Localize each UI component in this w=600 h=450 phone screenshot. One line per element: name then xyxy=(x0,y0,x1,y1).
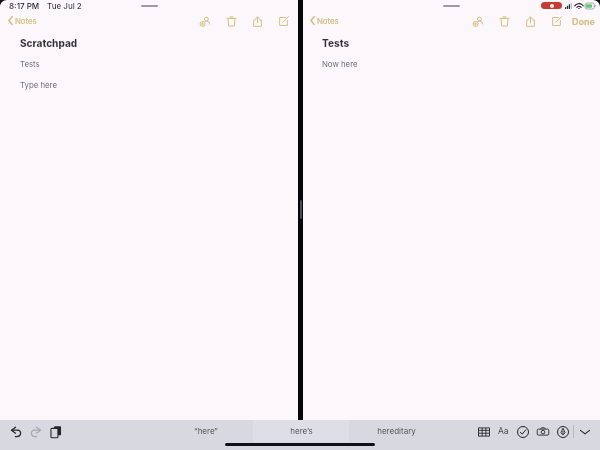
staticText: “here” xyxy=(194,426,218,436)
staticText: Type here xyxy=(20,80,57,89)
staticText: hereditary xyxy=(377,426,416,436)
button[interactable]: Hide keyboard xyxy=(577,424,592,439)
button[interactable]: Aa xyxy=(496,424,510,438)
staticText: 8:17 PM xyxy=(9,1,40,11)
button[interactable]: Add people xyxy=(471,14,486,29)
button[interactable]: here’s xyxy=(253,420,349,442)
button[interactable]: Compose xyxy=(276,14,291,29)
staticText: Notes xyxy=(15,16,37,25)
button[interactable]: Delete xyxy=(224,14,239,29)
staticText: Notes xyxy=(317,16,339,25)
button[interactable]: hereditary xyxy=(349,420,443,442)
button[interactable]: “here” xyxy=(159,420,253,442)
staticText: Tue Jul 2 xyxy=(47,1,82,11)
button[interactable]: Compose xyxy=(549,14,564,29)
staticText: Tests xyxy=(322,37,350,49)
button[interactable]: Checklist xyxy=(515,424,530,439)
staticText: here’s xyxy=(290,426,313,436)
button[interactable]: Paste xyxy=(48,424,63,439)
button[interactable]: Share xyxy=(523,14,538,29)
button[interactable]: Notes xyxy=(8,16,37,25)
button[interactable]: Undo xyxy=(8,424,23,439)
button[interactable]: Add people xyxy=(198,14,213,29)
button[interactable]: Share xyxy=(250,14,265,29)
button[interactable]: Done xyxy=(570,14,597,29)
staticText: Now here xyxy=(322,59,358,68)
button[interactable]: Table xyxy=(476,424,491,439)
button[interactable]: Markup xyxy=(555,424,570,439)
staticText: Scratchpad xyxy=(20,37,78,49)
staticText: Tests xyxy=(20,59,40,68)
staticText: Aa xyxy=(498,426,509,436)
button[interactable]: Camera xyxy=(535,424,550,439)
button[interactable]: Delete xyxy=(497,14,512,29)
button[interactable]: Notes xyxy=(310,16,339,25)
staticText: Done xyxy=(572,16,595,27)
button[interactable]: Redo xyxy=(28,424,43,439)
